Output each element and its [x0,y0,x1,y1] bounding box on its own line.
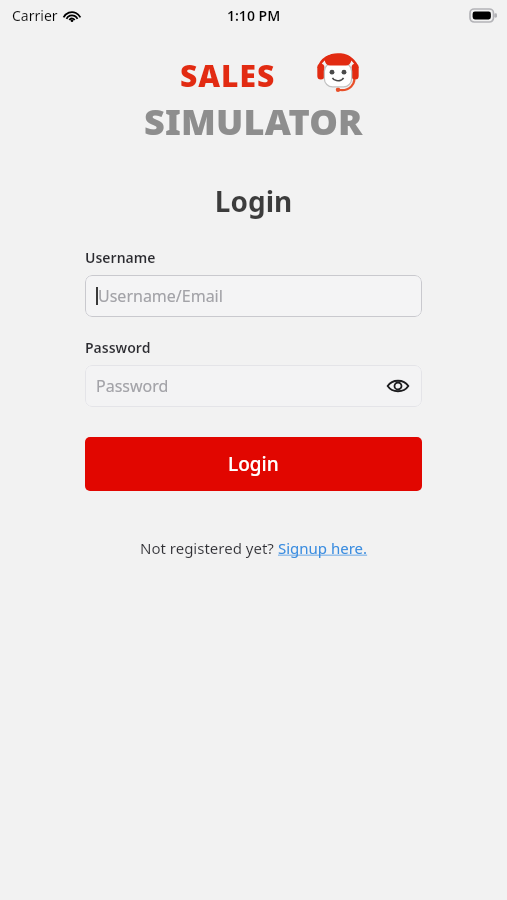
button[interactable]: Login [85,437,422,491]
staticText: SALES [180,55,276,96]
staticText: Login [0,182,507,220]
button[interactable]: Show password [385,373,411,399]
button[interactable]: Username/Email [85,275,422,317]
staticText: Password [96,375,169,397]
staticText: Username/Email [98,285,223,307]
staticText: 1:10 PM [227,6,281,25]
button[interactable]: Password [85,365,422,407]
button[interactable]: Signup here. [278,538,368,558]
staticText: Carrier [12,6,58,25]
staticText: Not registered yet? [140,538,278,558]
staticText: Password [85,338,151,357]
staticText: Username [85,248,156,267]
staticText: Login [228,451,279,477]
staticText: SIMULATOR [144,97,363,146]
